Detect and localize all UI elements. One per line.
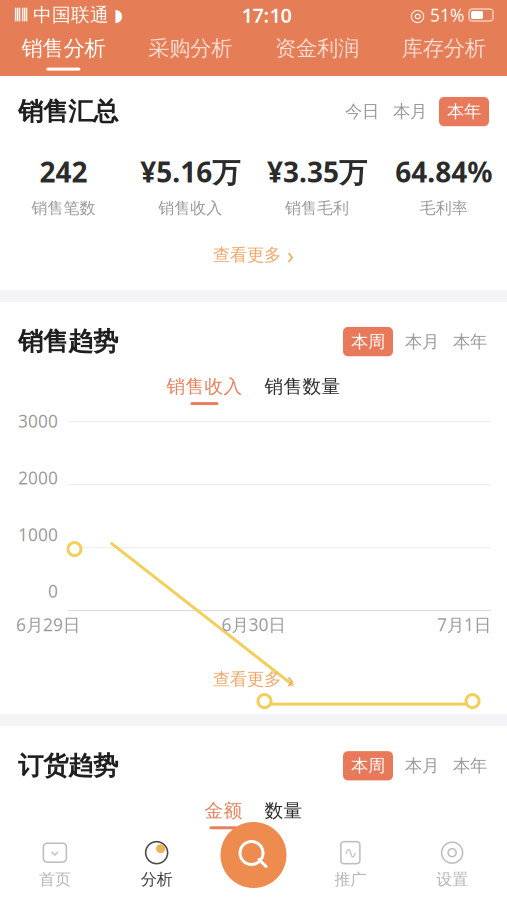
staticText: 本周	[351, 755, 385, 776]
staticText: ⌄	[47, 840, 62, 859]
button[interactable]: 资金利润	[253, 29, 380, 77]
button[interactable]: 库存分析	[380, 29, 507, 77]
staticText: 本年	[453, 755, 487, 776]
button[interactable]: 本年	[451, 327, 489, 356]
button[interactable]: 本月	[391, 97, 429, 126]
staticText: 242	[39, 153, 87, 190]
button[interactable]: 采购分析	[127, 29, 254, 77]
staticText: 6月30日	[221, 613, 285, 636]
staticText: 订货趋势	[18, 750, 118, 781]
staticText: 2000	[18, 466, 58, 489]
staticText: 中国联通	[33, 3, 109, 26]
button[interactable]: ⌄	[4, 835, 106, 895]
staticText: 今日	[345, 101, 379, 122]
staticText: 销售数量	[264, 375, 340, 398]
staticText: 销售分析	[21, 35, 105, 62]
staticText: 销售收入	[158, 198, 222, 218]
button[interactable]: ∿	[299, 835, 401, 895]
staticText: ›	[287, 664, 294, 694]
staticText: 资金利润	[275, 35, 359, 62]
staticText: 分析	[141, 870, 173, 889]
staticText: 64.84%	[395, 153, 492, 190]
staticText: 本月	[393, 101, 427, 122]
staticText: 销售毛利	[285, 198, 349, 218]
staticText: 查看更多	[213, 668, 281, 690]
button[interactable]: 设置	[401, 835, 503, 895]
button[interactable]: 销售数量	[264, 375, 340, 405]
staticText: 首页	[39, 870, 71, 889]
staticText: ›	[287, 240, 294, 270]
staticText: ¥5.16万	[140, 153, 240, 190]
staticText: 金额	[204, 799, 242, 822]
staticText: 设置	[436, 870, 468, 889]
button[interactable]: 金额	[204, 799, 242, 829]
staticText: 本月	[405, 755, 439, 776]
button[interactable]: 本年	[451, 751, 489, 780]
button[interactable]: 今日	[343, 97, 381, 126]
staticText: 本年	[447, 101, 481, 122]
button[interactable]: 本年	[439, 97, 489, 126]
staticText: 0	[48, 580, 58, 603]
staticText: 本年	[453, 331, 487, 352]
staticText: 毛利率	[420, 198, 468, 218]
button[interactable]: 本周	[343, 327, 393, 356]
button[interactable]: 数量	[264, 799, 302, 829]
staticText: ∿	[344, 844, 357, 862]
button[interactable]: 本月	[403, 751, 441, 780]
staticText: 本周	[351, 331, 385, 352]
button[interactable]: 查看更多	[199, 232, 308, 278]
staticText: 1000	[18, 523, 58, 546]
staticText: 51%	[430, 3, 464, 26]
staticText: 推广	[334, 870, 366, 889]
staticText: ◎	[410, 5, 425, 25]
staticText: 采购分析	[148, 35, 232, 62]
staticText: 17:10	[241, 2, 291, 28]
staticText: ⦀⦀	[14, 7, 28, 23]
staticText: 库存分析	[402, 35, 486, 62]
staticText: 销售汇总	[18, 96, 118, 127]
staticText: 6月29日	[16, 613, 80, 636]
button[interactable]: Search	[220, 822, 286, 888]
staticText: ¥3.35万	[267, 153, 367, 190]
staticText: 数量	[264, 799, 302, 822]
staticText: 7月1日	[437, 613, 491, 636]
staticText: 3000	[18, 410, 58, 433]
staticText: 查看更多	[213, 244, 281, 266]
button[interactable]: 分析	[106, 835, 208, 895]
staticText: 销售笔数	[31, 198, 95, 218]
button[interactable]: 本周	[343, 751, 393, 780]
staticText: 销售收入	[166, 375, 242, 398]
button[interactable]: 查看更多	[199, 656, 308, 702]
button[interactable]: 本月	[403, 327, 441, 356]
staticText: ◗	[114, 5, 123, 25]
button[interactable]: 销售收入	[166, 375, 242, 405]
staticText: 本月	[405, 331, 439, 352]
staticText: 销售趋势	[18, 326, 118, 357]
button[interactable]: 销售分析	[0, 29, 127, 77]
